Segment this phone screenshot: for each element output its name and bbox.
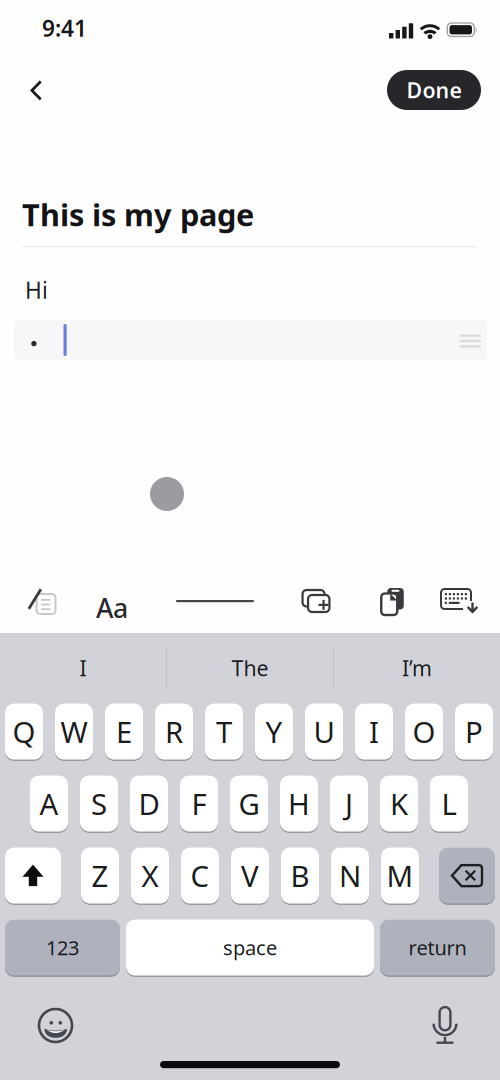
button[interactable]: The (167, 635, 333, 701)
staticText: Z (91, 856, 108, 895)
button[interactable] (24, 587, 56, 615)
button[interactable]: L (430, 775, 468, 832)
staticText: D (138, 784, 159, 823)
button[interactable]: 123 (5, 919, 120, 976)
button[interactable]: D (130, 775, 168, 832)
staticText: Done (406, 76, 461, 104)
button[interactable]: A (30, 775, 68, 832)
button[interactable]: return (380, 919, 495, 976)
button[interactable]: Z (81, 847, 119, 904)
button[interactable]: M (381, 847, 419, 904)
button[interactable]: P (455, 703, 493, 760)
staticText: S (91, 784, 107, 823)
button[interactable]: N (331, 847, 369, 904)
button[interactable]: E (105, 703, 143, 760)
staticText: N (339, 856, 361, 895)
button[interactable]: S (80, 775, 118, 832)
button[interactable] (176, 600, 254, 602)
button[interactable]: W (55, 703, 93, 760)
button[interactable]: F (180, 775, 218, 832)
staticText: O (412, 712, 435, 751)
button[interactable]: U (305, 703, 343, 760)
staticText: 9:41 (42, 13, 87, 43)
staticText: V (241, 856, 259, 895)
staticText: T (216, 712, 232, 751)
button[interactable]: R (155, 703, 193, 760)
button[interactable]: Aa (96, 590, 128, 625)
button[interactable] (5, 847, 61, 904)
button[interactable]: Y (255, 703, 293, 760)
staticText: J (345, 784, 353, 823)
button[interactable]: Q (5, 703, 43, 760)
staticText: U (313, 712, 334, 751)
button[interactable]: H (280, 775, 318, 832)
button[interactable]: I’m (334, 635, 500, 701)
button[interactable]: Done (387, 70, 481, 110)
button[interactable] (439, 847, 495, 904)
staticText: Hi (25, 275, 48, 305)
staticText: I’m (402, 654, 432, 682)
button[interactable]: K (380, 775, 418, 832)
button[interactable] (30, 80, 42, 101)
button[interactable]: J (330, 775, 368, 832)
button[interactable]: O (405, 703, 443, 760)
staticText: space (223, 934, 277, 961)
staticText: H (288, 784, 310, 823)
button[interactable]: I (0, 635, 166, 701)
button[interactable]: C (181, 847, 219, 904)
staticText: Y (265, 712, 282, 751)
button[interactable]: space (126, 919, 374, 976)
staticText: K (390, 784, 408, 823)
button[interactable]: T (205, 703, 243, 760)
staticText: P (465, 712, 483, 751)
button[interactable] (459, 334, 481, 347)
staticText: return (408, 934, 466, 961)
button[interactable]: V (231, 847, 269, 904)
button[interactable]: I (355, 703, 393, 760)
staticText: Q (12, 712, 35, 751)
staticText: F (191, 784, 206, 823)
staticText: I (369, 712, 379, 751)
staticText: M (386, 856, 413, 895)
button[interactable]: G (230, 775, 268, 832)
button[interactable]: B (281, 847, 319, 904)
staticText: B (290, 856, 309, 895)
staticText: X (141, 856, 158, 895)
staticText: E (116, 712, 132, 751)
button[interactable] (381, 588, 404, 615)
staticText: Aa (96, 590, 128, 625)
button[interactable] (299, 589, 333, 613)
staticText: 123 (46, 934, 79, 961)
button[interactable] (433, 1007, 457, 1044)
staticText: I (79, 654, 86, 682)
button[interactable] (438, 589, 482, 613)
staticText: L (441, 784, 456, 823)
staticText: This is my page (22, 194, 254, 235)
staticText: A (39, 784, 58, 823)
staticText: R (165, 712, 183, 751)
staticText: C (190, 856, 209, 895)
button[interactable] (39, 1009, 72, 1042)
staticText: G (238, 784, 259, 823)
staticText: W (60, 712, 87, 751)
button[interactable]: X (131, 847, 169, 904)
staticText: The (231, 654, 268, 682)
